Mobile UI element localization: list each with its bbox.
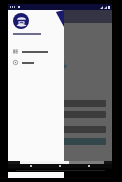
button[interactable]: [14, 100, 106, 107]
button[interactable]: [14, 111, 106, 118]
other: Account: [13, 13, 29, 29]
button[interactable]: Documents: [8, 46, 64, 57]
other: Assistant: [58, 61, 67, 70]
button[interactable]: [14, 138, 106, 145]
button[interactable]: [14, 126, 106, 133]
button[interactable]: Account: [8, 10, 64, 42]
button[interactable]: Settings: [8, 57, 64, 68]
button[interactable]: [8, 10, 112, 172]
other: Settings: [13, 60, 18, 65]
other: Documents: [13, 49, 18, 54]
